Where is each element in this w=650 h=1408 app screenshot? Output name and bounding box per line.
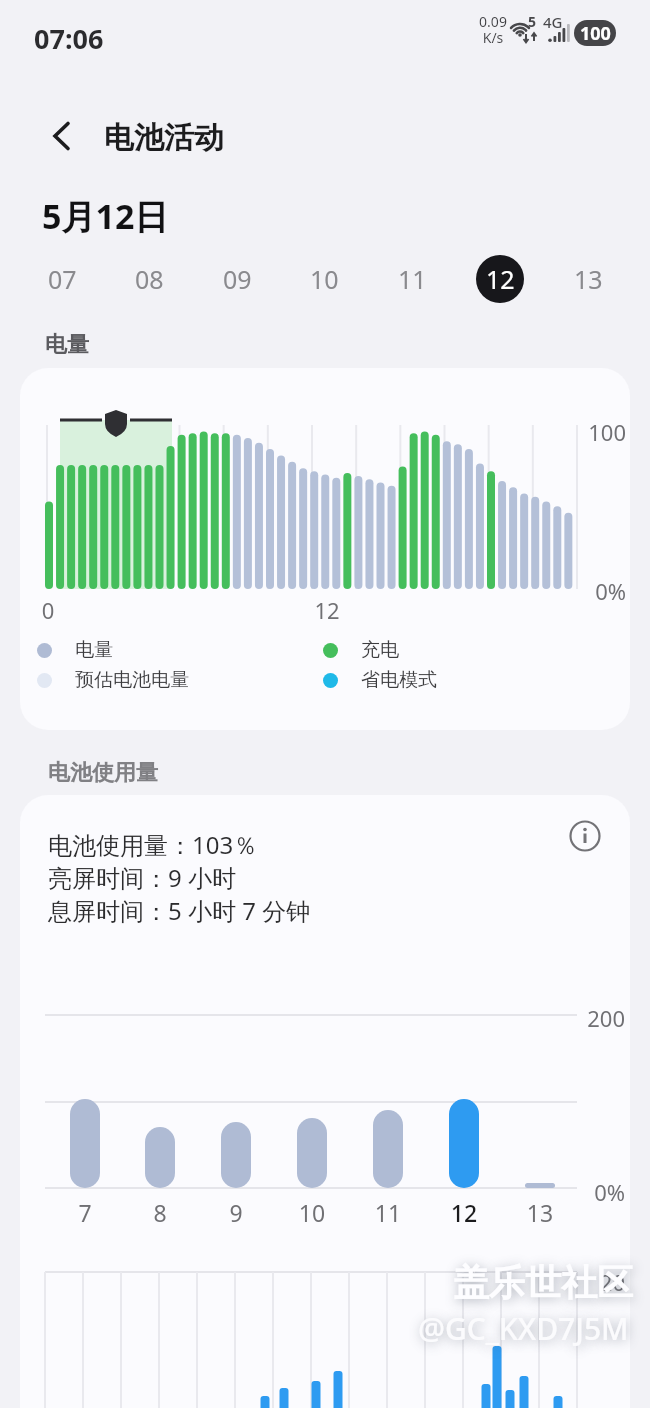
staticText: 息屏时间：5 小时 7 分钟 (48, 894, 311, 927)
staticText: 电池活动 (104, 119, 224, 157)
button[interactable]: 09 (207, 255, 267, 303)
button[interactable]: 11 (382, 255, 442, 303)
staticText: 12 (312, 595, 342, 625)
staticText: 13 (520, 1197, 560, 1228)
staticText: 0% (575, 1177, 625, 1207)
staticText: 13 (574, 262, 603, 296)
staticText: 充电 (361, 638, 399, 662)
staticText: 200 (575, 1003, 625, 1033)
button[interactable]: 10 (294, 255, 354, 303)
staticText: 亮屏时间：9 小时 (48, 861, 236, 894)
button[interactable]: 08 (119, 255, 179, 303)
staticText: 0% (580, 576, 626, 606)
staticText: 20 (575, 1267, 625, 1297)
staticText: 12 (444, 1197, 484, 1228)
staticText: 12 (486, 262, 515, 296)
staticText: 0.09 (478, 12, 508, 31)
staticText: 07 (48, 262, 77, 296)
staticText: 10 (292, 1197, 332, 1228)
staticText: 盖乐世社区 (453, 1260, 633, 1305)
button[interactable]: 100 (574, 20, 616, 46)
staticText: 5月12日 (42, 193, 169, 239)
button[interactable]: 12 (476, 255, 524, 303)
staticText: 预估电池电量 (75, 668, 189, 692)
button[interactable] (323, 673, 338, 688)
staticText: 电量 (75, 638, 113, 662)
button[interactable]: 07 (32, 255, 92, 303)
staticText: 7 (65, 1197, 105, 1228)
button[interactable]: 电池使用量：103％ (20, 795, 630, 1408)
staticText: 100 (580, 417, 626, 447)
staticText: 电池使用量 (48, 759, 158, 787)
button[interactable] (569, 820, 601, 852)
staticText: 11 (368, 1197, 408, 1228)
button[interactable] (48, 122, 76, 152)
staticText: 4G (543, 12, 563, 32)
staticText: 8 (140, 1197, 180, 1228)
staticText: 10 (310, 262, 339, 296)
staticText: 08 (135, 262, 164, 296)
staticText: 电量 (45, 331, 89, 359)
button[interactable]: 100 (20, 368, 630, 730)
staticText: 省电模式 (361, 668, 437, 692)
staticText: 电池使用量：103％ (48, 828, 258, 861)
button[interactable]: 13 (558, 255, 618, 303)
staticText: @GC_KXD7J5M (418, 1308, 629, 1349)
staticText: 09 (223, 262, 252, 296)
staticText: 07:06 (34, 20, 104, 57)
button[interactable] (37, 643, 52, 658)
staticText: 5 (528, 12, 537, 31)
button[interactable] (37, 673, 52, 688)
staticText: 9 (216, 1197, 256, 1228)
staticText: 11 (398, 262, 427, 296)
staticText: K/s (478, 28, 508, 47)
staticText: 0 (38, 595, 58, 625)
button[interactable] (323, 643, 338, 658)
staticText: 100 (580, 21, 611, 46)
